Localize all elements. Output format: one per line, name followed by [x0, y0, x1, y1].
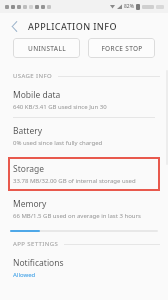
staticText: Memory: [13, 198, 47, 210]
staticText: Storage: [13, 163, 45, 175]
staticText: APPLICATION INFO: [28, 20, 117, 32]
button[interactable]: Notifications: [0, 250, 168, 285]
button[interactable]: Battery: [0, 118, 168, 153]
button[interactable]: Mobile data: [0, 82, 168, 117]
staticText: Battery: [13, 125, 43, 137]
staticText: 0% used since last fully charged: [13, 139, 103, 147]
staticText: 640 KB/3.41 GB used since Jun 30: [13, 103, 107, 111]
staticText: Mobile data: [13, 89, 61, 101]
staticText: Allowed: [13, 271, 36, 279]
staticText: 33.78 MB/32.00 GB of internal storage us…: [13, 177, 136, 185]
staticText: FORCE STOP: [101, 44, 143, 53]
button[interactable]: UNINSTALL: [13, 38, 80, 58]
staticText: Notifications: [13, 257, 64, 269]
button[interactable]: FORCE STOP: [88, 38, 155, 58]
button[interactable]: Memory: [0, 191, 168, 226]
staticText: USAGE INFO: [13, 72, 53, 80]
staticText: 82%: [124, 3, 134, 10]
staticText: UNINSTALL: [28, 44, 66, 53]
button[interactable]: Storage: [8, 157, 160, 191]
button[interactable]: Back: [6, 18, 22, 34]
staticText: APP SETTINGS: [13, 240, 59, 248]
staticText: 66 MB/1.5 GB used on average in last 3 h…: [13, 212, 141, 220]
